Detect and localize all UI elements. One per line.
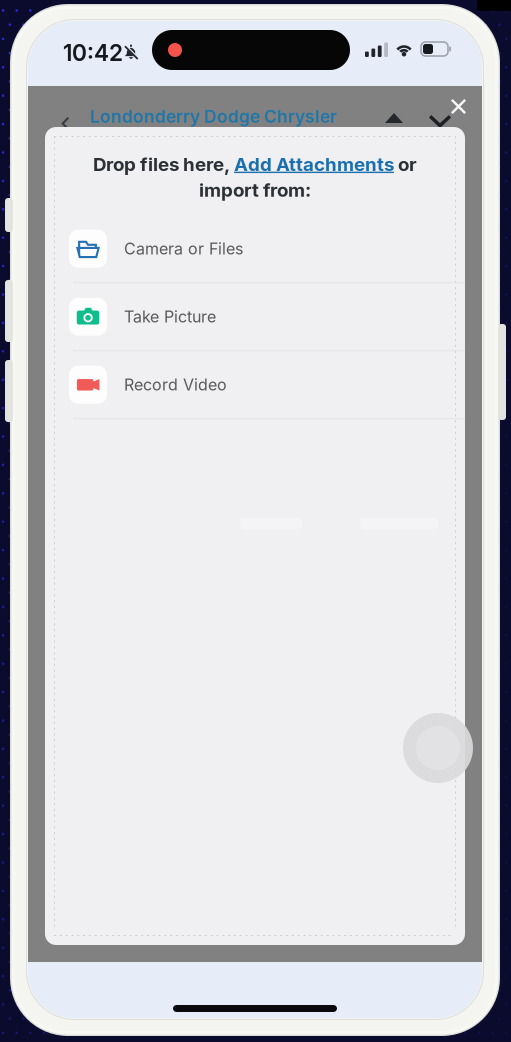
button[interactable]: Close <box>437 85 480 128</box>
button[interactable]: Add Attachments <box>234 153 394 176</box>
staticText: Camera or Files <box>124 239 243 258</box>
staticText: Add Attachments <box>234 153 394 176</box>
button[interactable]: Help <box>403 713 473 783</box>
staticText: import from: <box>199 179 311 201</box>
staticText: Drop files here, <box>93 153 234 176</box>
staticText: Londonderry Dodge Chrysler <box>90 106 337 127</box>
staticText: or <box>394 153 417 176</box>
button[interactable]: Camera or Files <box>45 215 465 282</box>
staticText: Take Picture <box>124 307 216 326</box>
staticText: Record Video <box>124 375 227 394</box>
button[interactable]: Take Picture <box>45 283 465 350</box>
button[interactable]: Record Video <box>45 351 465 418</box>
staticText: 10:42 <box>63 39 123 66</box>
